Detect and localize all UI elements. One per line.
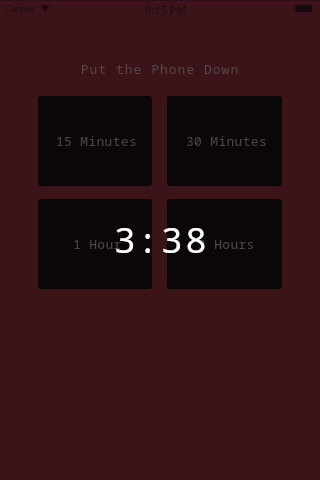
staticText: Carrier <box>5 2 35 14</box>
button[interactable]: 3 Hours <box>167 199 282 289</box>
staticText: 3 <box>115 216 136 264</box>
staticText: Put the Phone Down <box>0 60 320 78</box>
button[interactable]: 30 Minutes <box>167 96 282 186</box>
other: Signal strength <box>40 4 50 12</box>
staticText: 8 <box>186 216 207 264</box>
staticText: 3 Hours <box>198 235 255 253</box>
staticText: 3 <box>162 216 183 264</box>
staticText: 30 Minutes <box>186 132 268 150</box>
staticText: : <box>143 216 153 264</box>
staticText: 15 Minutes <box>56 132 138 150</box>
button[interactable]: 1 Hour <box>38 199 152 289</box>
staticText: 8:15 PM <box>145 2 187 17</box>
button[interactable]: 15 Minutes <box>38 96 152 186</box>
staticText: 1 Hour <box>73 235 122 253</box>
